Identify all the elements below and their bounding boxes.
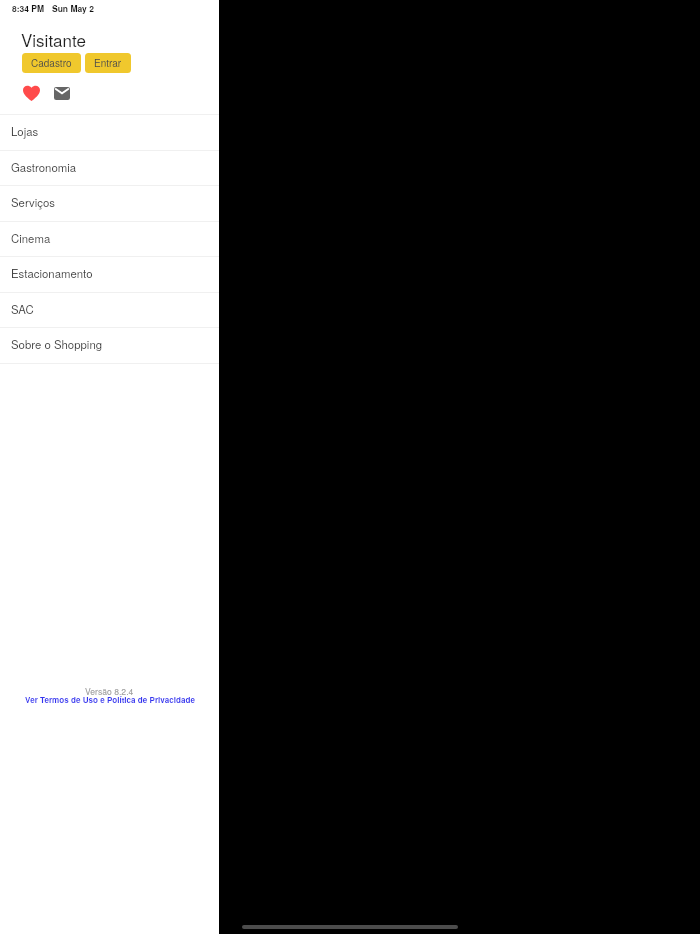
button[interactable]: Cadastro xyxy=(22,53,81,73)
button[interactable]: Mensagens xyxy=(53,85,70,101)
button[interactable]: Serviços xyxy=(0,185,219,221)
button[interactable]: Lojas xyxy=(0,114,219,150)
button[interactable]: Sobre o Shopping xyxy=(0,327,219,363)
button[interactable]: Cinema xyxy=(0,221,219,257)
staticText: Sun May 2 xyxy=(52,2,94,14)
staticText: Versão 8.2.4 xyxy=(85,685,134,697)
button[interactable]: Entrar xyxy=(85,53,131,73)
staticText: Estacionamento xyxy=(11,265,93,281)
staticText: Gastronomia xyxy=(11,159,77,175)
staticText: 8:34 PM xyxy=(12,2,45,14)
button[interactable]: Gastronomia xyxy=(0,150,219,186)
staticText: Cinema xyxy=(11,230,51,246)
staticText: Sobre o Shopping xyxy=(11,336,103,352)
staticText: Visitante xyxy=(21,27,86,51)
staticText: SAC xyxy=(11,301,34,317)
button[interactable]: Estacionamento xyxy=(0,256,219,292)
button[interactable]: SAC xyxy=(0,292,219,328)
button[interactable]: Ver Termos de Uso e Política de Privacid… xyxy=(25,694,195,706)
staticText: Entrar xyxy=(94,56,122,70)
staticText: Lojas xyxy=(11,123,39,139)
staticText: Cadastro xyxy=(31,56,72,70)
button[interactable]: Favoritos xyxy=(23,85,40,101)
staticText: Serviços xyxy=(11,194,56,210)
